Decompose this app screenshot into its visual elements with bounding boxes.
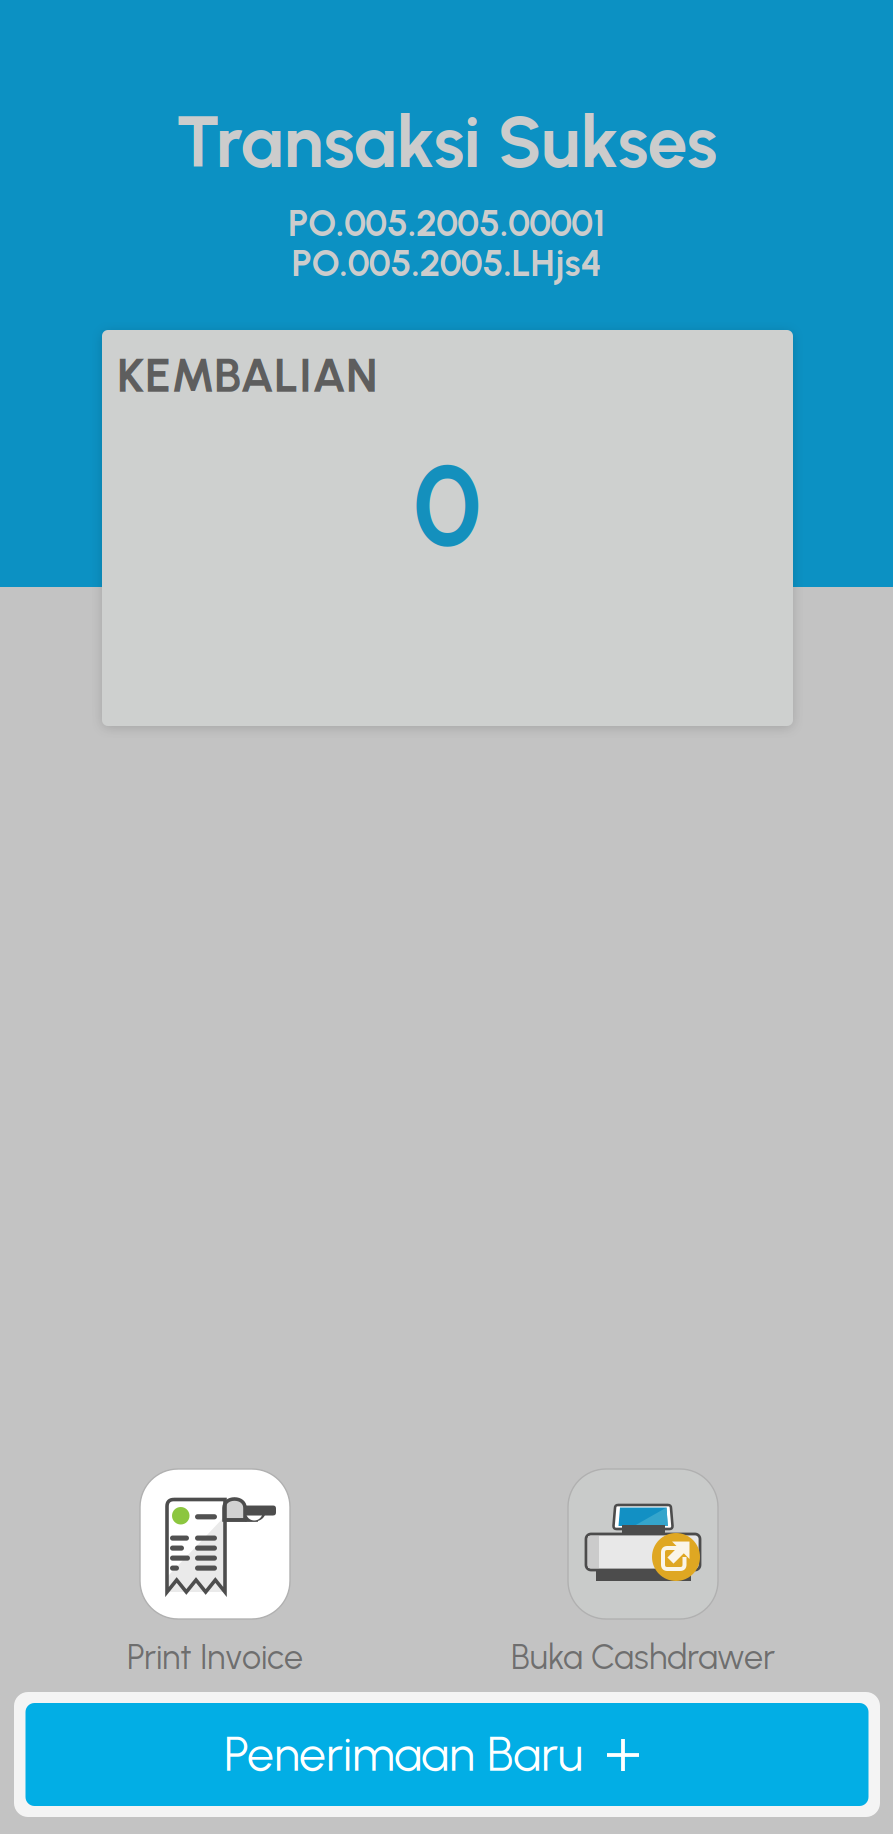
staticText: PO.005.2005.00001 bbox=[288, 201, 605, 245]
staticText: Buka Cashdrawer bbox=[511, 1637, 775, 1677]
button[interactable]: Buka Cashdrawer bbox=[478, 1469, 808, 1681]
staticText: Penerimaan Baru bbox=[224, 1725, 583, 1783]
button[interactable]: Print Invoice bbox=[50, 1469, 380, 1681]
button[interactable]: Penerimaan Baru bbox=[14, 1692, 880, 1817]
staticText: PO.005.2005.LHjs4 bbox=[291, 241, 601, 285]
staticText: Transaksi Sukses bbox=[175, 99, 717, 185]
staticText: Print Invoice bbox=[127, 1637, 303, 1677]
staticText: KEMBALIAN bbox=[117, 347, 378, 403]
staticText: 0 bbox=[413, 438, 482, 574]
